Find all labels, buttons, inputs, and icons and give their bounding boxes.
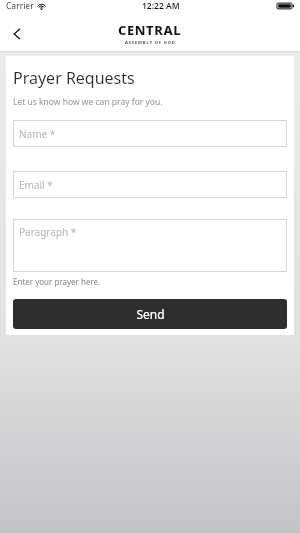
button[interactable]: Email * bbox=[13, 171, 287, 198]
staticText: Prayer Requests bbox=[13, 67, 135, 89]
button[interactable]: Back bbox=[0, 17, 34, 51]
staticText: Enter your prayer here. bbox=[13, 276, 101, 287]
staticText: Carrier bbox=[6, 0, 34, 12]
staticText: Name * bbox=[19, 127, 56, 141]
button[interactable]: Paragraph * bbox=[13, 219, 287, 272]
staticText: Paragraph * bbox=[19, 225, 77, 239]
button[interactable]: Send bbox=[13, 299, 287, 329]
staticText: CENTRAL bbox=[118, 21, 182, 39]
staticText: Send bbox=[136, 306, 165, 322]
staticText: Email * bbox=[19, 178, 53, 192]
staticText: 12:22 AM bbox=[142, 0, 180, 12]
button[interactable]: Name * bbox=[13, 120, 287, 147]
staticText: ASSEMBLY OF GOD bbox=[125, 40, 176, 46]
staticText: Let us know how we can pray for you. bbox=[13, 96, 163, 108]
